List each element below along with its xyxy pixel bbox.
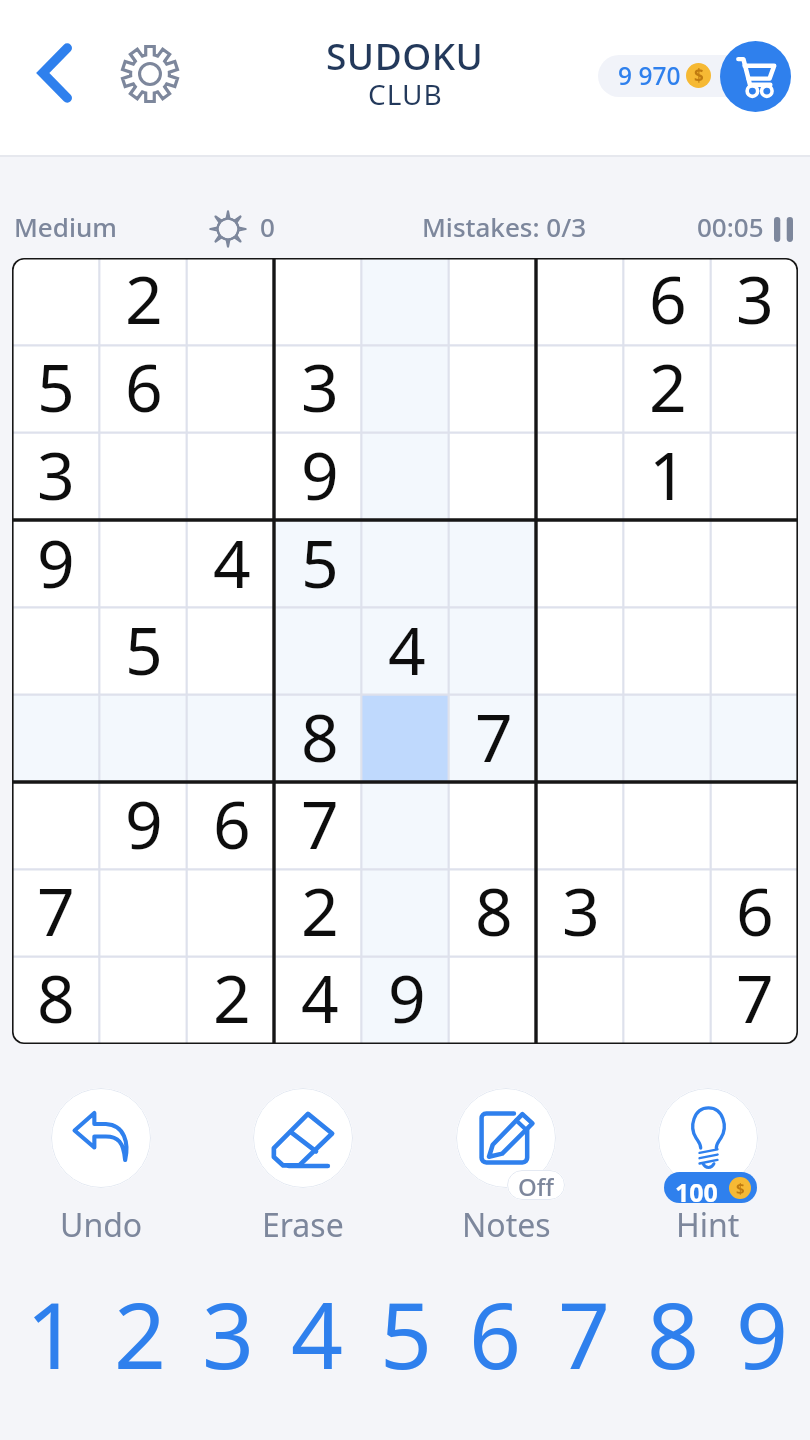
button[interactable]: 7 [12,870,100,957]
button[interactable]: 100 [633,1082,783,1242]
staticText: 3 [736,258,774,341]
button[interactable] [624,957,711,1044]
button[interactable]: 4 [276,957,363,1044]
button[interactable]: 4 [363,609,450,696]
button[interactable] [188,609,276,696]
button[interactable]: Pause [774,217,793,242]
button[interactable] [450,522,537,609]
button[interactable] [711,346,798,434]
button[interactable] [450,957,537,1044]
button[interactable]: 6 [188,783,276,870]
button[interactable] [711,783,798,870]
button[interactable] [188,346,276,434]
button[interactable] [450,783,537,870]
button[interactable] [188,696,276,783]
button[interactable] [537,258,624,346]
button[interactable] [100,522,188,609]
button[interactable] [12,609,100,696]
button[interactable]: 9 [718,1272,807,1382]
button[interactable]: 2 [100,258,188,346]
button[interactable]: 4 [188,522,276,609]
button[interactable] [450,434,537,522]
button[interactable] [100,434,188,522]
button[interactable]: 7 [711,957,798,1044]
button[interactable] [624,522,711,609]
button[interactable]: 6 [624,258,711,346]
button[interactable]: Settings [121,45,179,103]
button[interactable]: Back [38,41,72,105]
button[interactable]: 9 [363,957,450,1044]
button[interactable] [363,346,450,434]
button[interactable] [537,522,624,609]
button[interactable]: 2 [276,870,363,957]
button[interactable]: 5 [362,1272,451,1382]
button[interactable] [537,783,624,870]
button[interactable]: 8 [450,870,537,957]
button[interactable] [711,434,798,522]
button[interactable]: 3 [184,1272,273,1382]
button[interactable] [624,870,711,957]
button[interactable] [537,609,624,696]
button[interactable]: 3 [711,258,798,346]
button[interactable]: 3 [12,434,100,522]
button[interactable] [100,696,188,783]
button[interactable]: 8 [629,1272,718,1382]
button[interactable] [363,870,450,957]
button[interactable]: Undo [26,1082,176,1242]
button[interactable] [12,258,100,346]
button[interactable] [711,522,798,609]
button[interactable] [363,696,450,783]
button[interactable] [188,870,276,957]
button[interactable]: Erase [228,1082,378,1242]
button[interactable]: 1 [8,1272,96,1382]
button[interactable] [188,258,276,346]
button[interactable] [450,346,537,434]
button[interactable]: 4 [273,1272,362,1382]
button[interactable]: Off [431,1082,581,1242]
button[interactable] [537,346,624,434]
button[interactable] [711,696,798,783]
button[interactable] [100,870,188,957]
button[interactable]: 9 [100,783,188,870]
button[interactable]: 6 [100,346,188,434]
button[interactable]: 5 [12,346,100,434]
button[interactable]: 2 [188,957,276,1044]
button[interactable]: 7 [450,696,537,783]
button[interactable]: 9 [276,434,363,522]
button[interactable] [363,434,450,522]
button[interactable] [537,696,624,783]
button[interactable] [12,783,100,870]
button[interactable]: 7 [540,1272,629,1382]
button[interactable]: Shop [720,41,791,112]
button[interactable] [363,258,450,346]
button[interactable] [711,609,798,696]
button[interactable] [100,957,188,1044]
button[interactable]: 6 [451,1272,540,1382]
button[interactable] [12,696,100,783]
button[interactable]: 3 [276,346,363,434]
button[interactable] [276,258,363,346]
button[interactable] [624,783,711,870]
button[interactable] [363,783,450,870]
button[interactable] [276,609,363,696]
button[interactable]: 5 [276,522,363,609]
button[interactable] [537,957,624,1044]
button[interactable]: 2 [624,346,711,434]
button[interactable]: 6 [711,870,798,957]
button[interactable]: 9 [12,522,100,609]
button[interactable] [188,434,276,522]
button[interactable]: 8 [276,696,363,783]
button[interactable]: 5 [100,609,188,696]
button[interactable]: 1 [624,434,711,522]
button[interactable]: 9 970 [598,55,758,97]
button[interactable] [363,522,450,609]
button[interactable] [624,696,711,783]
button[interactable] [624,609,711,696]
button[interactable]: 2 [96,1272,184,1382]
button[interactable] [450,609,537,696]
button[interactable]: 8 [12,957,100,1044]
button[interactable] [537,434,624,522]
button[interactable]: 3 [537,870,624,957]
button[interactable] [450,258,537,346]
button[interactable]: 7 [276,783,363,870]
